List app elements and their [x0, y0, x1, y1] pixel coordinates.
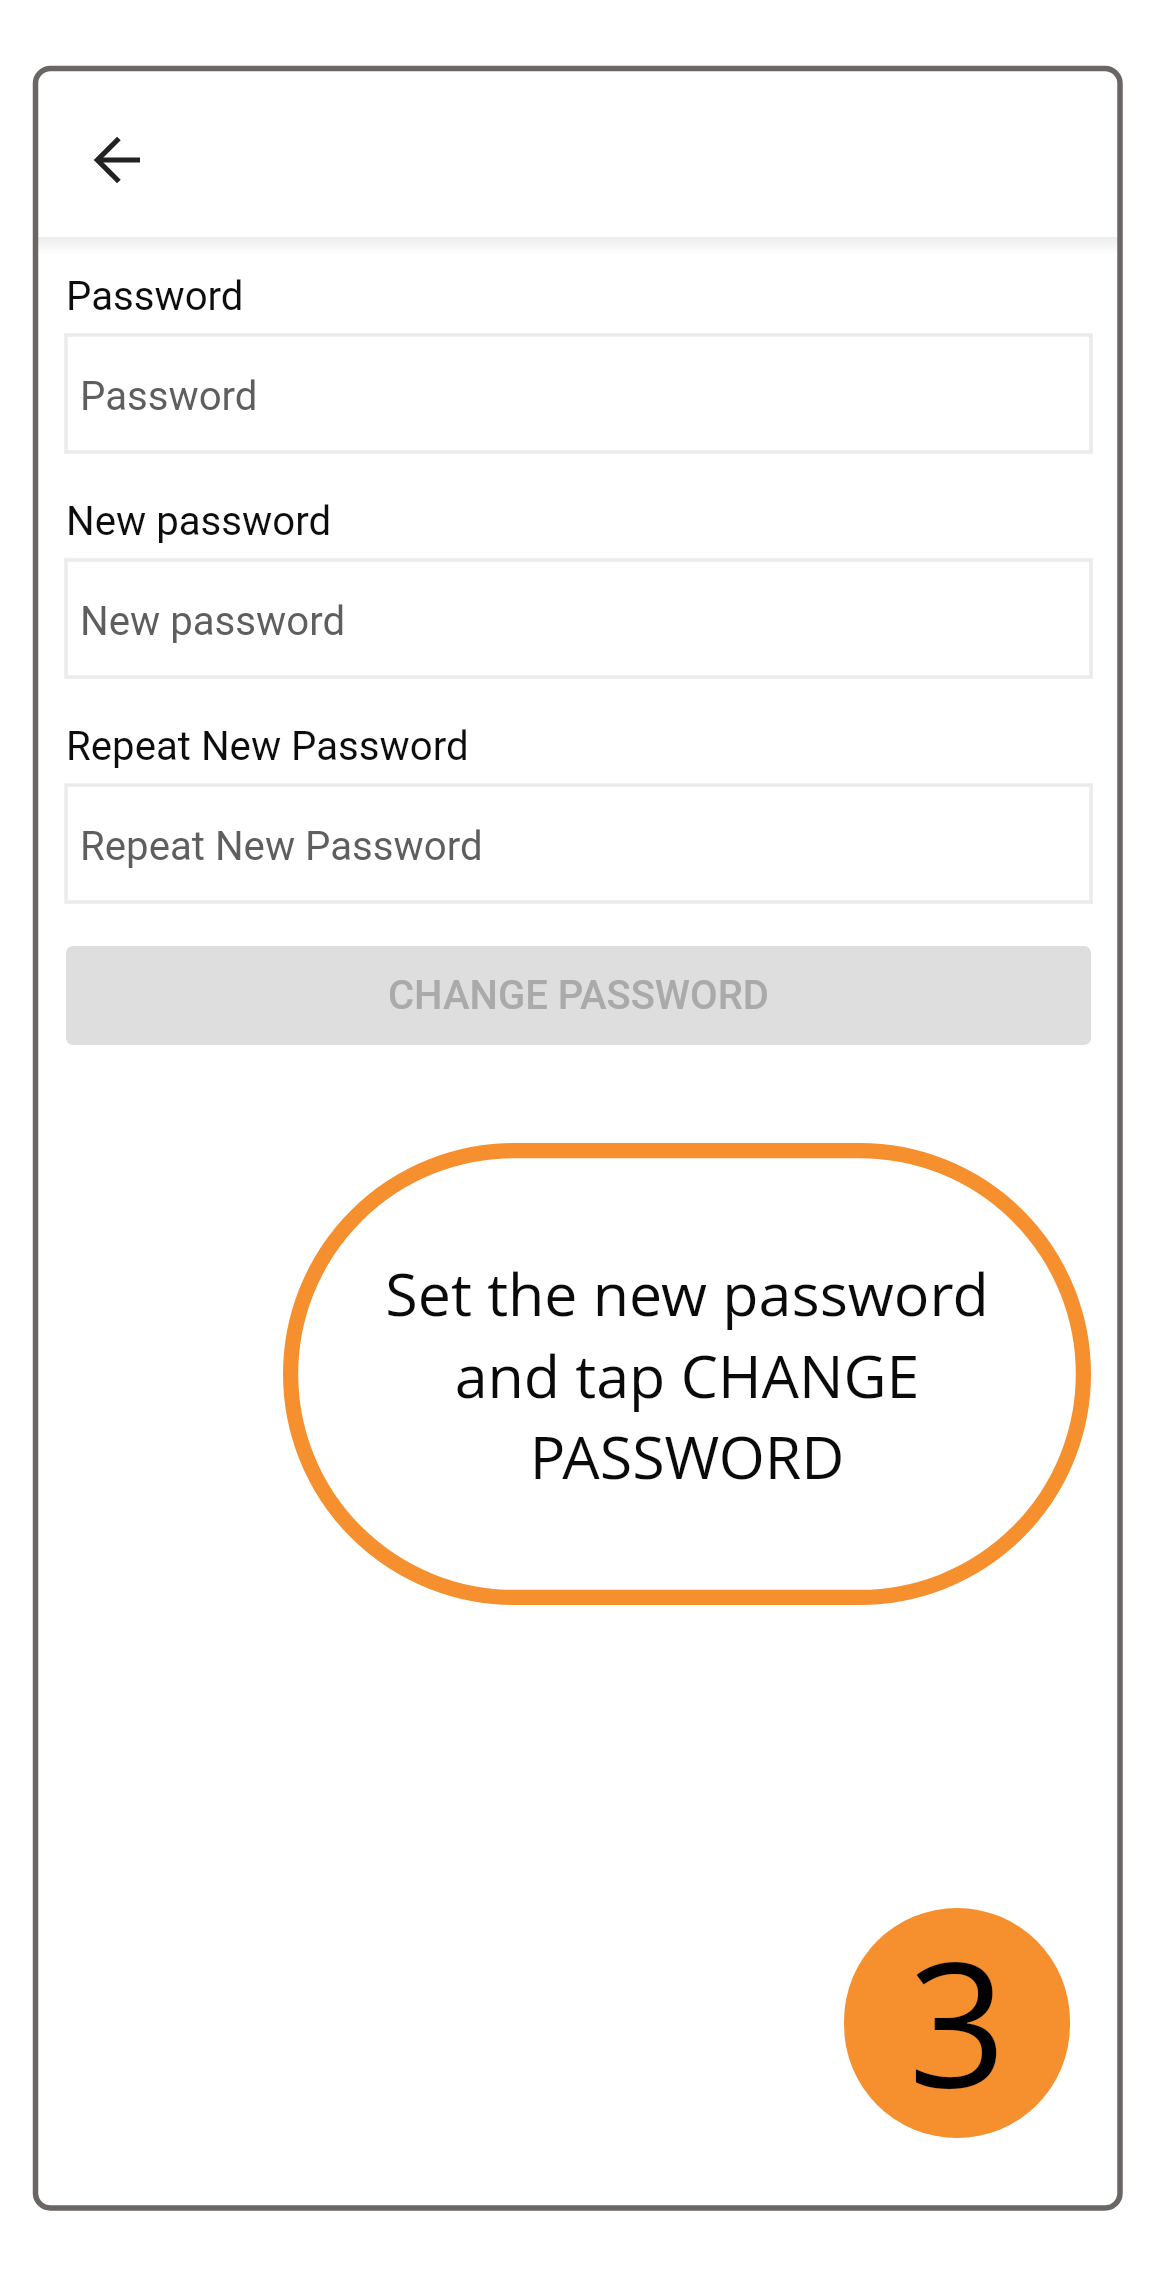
button[interactable]: Password	[66, 335, 1091, 452]
staticText: Password	[66, 273, 244, 320]
staticText: Repeat New Password	[80, 823, 483, 870]
staticText: Set the new password and tap CHANGE PASS…	[317, 1253, 1057, 1496]
staticText: New password	[66, 498, 332, 545]
staticText: Repeat New Password	[66, 723, 469, 770]
staticText: Password	[80, 373, 258, 420]
staticText: CHANGE PASSWORD	[388, 972, 769, 1019]
button[interactable]: Navigate back	[73, 114, 165, 206]
button[interactable]: Step 3	[844, 1908, 1070, 2138]
button[interactable]: Repeat New Password	[66, 785, 1091, 902]
staticText: 3	[908, 1908, 1007, 2133]
button[interactable]: New password	[66, 560, 1091, 677]
staticText: New password	[80, 598, 346, 645]
button[interactable]: CHANGE PASSWORD	[66, 946, 1091, 1045]
